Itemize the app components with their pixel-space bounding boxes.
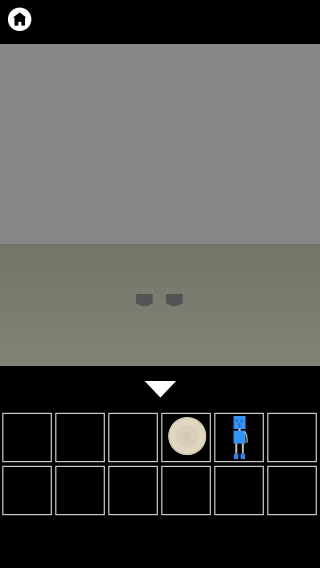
button[interactable]: Inventory slot 6 <box>268 413 316 462</box>
button[interactable]: Inventory slot 7 <box>3 466 51 515</box>
button[interactable]: Inventory slot 12 <box>268 466 316 515</box>
button[interactable]: Inventory slot 5 <box>215 413 263 462</box>
button[interactable]: Move forward <box>132 373 188 405</box>
button[interactable]: Inventory slot 3 <box>109 413 157 462</box>
button[interactable]: Inventory slot 8 <box>56 466 104 515</box>
button[interactable]: Inventory slot 4 <box>162 413 210 462</box>
button[interactable]: Inventory slot 10 <box>162 466 210 515</box>
button[interactable]: Inventory slot 2 <box>56 413 104 462</box>
button[interactable]: Inventory slot 9 <box>109 466 157 515</box>
button[interactable]: Inventory slot 1 <box>3 413 51 462</box>
button[interactable]: Home <box>0 0 40 40</box>
button[interactable]: Inventory slot 11 <box>215 466 263 515</box>
button[interactable]: Slippers <box>136 286 184 307</box>
